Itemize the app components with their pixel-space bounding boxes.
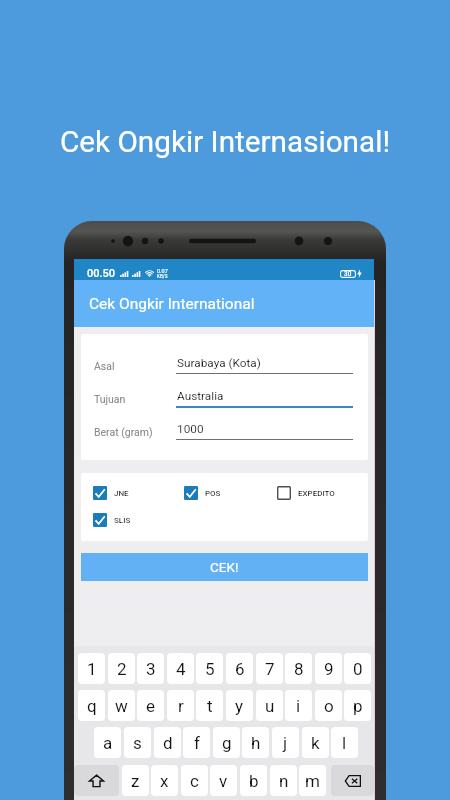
staticText: 5: [205, 659, 215, 679]
button[interactable]: 5: [196, 653, 223, 684]
button[interactable]: b: [240, 765, 267, 796]
button[interactable]: 3: [137, 653, 164, 684]
button[interactable]: h: [242, 727, 269, 758]
staticText: Australia: [177, 389, 224, 403]
button[interactable]: CEK!: [81, 553, 368, 581]
staticText: POS: [205, 489, 221, 498]
button[interactable]: s: [124, 727, 151, 758]
staticText: Surabaya (Kota): [177, 356, 261, 370]
staticText: j: [283, 733, 288, 753]
button[interactable]: 6: [226, 653, 253, 684]
button[interactable]: Backspace: [331, 765, 374, 796]
staticText: s: [133, 733, 142, 753]
staticText: 0.07: [157, 268, 168, 274]
staticText: JNE: [114, 489, 129, 498]
button[interactable]: SLIS: [93, 513, 131, 527]
staticText: 7: [265, 659, 275, 679]
button[interactable]: Cek Ongkir International: [74, 280, 374, 327]
button[interactable]: u: [256, 690, 283, 721]
button[interactable]: z: [122, 765, 149, 796]
staticText: Asal: [94, 360, 115, 372]
staticText: h: [251, 733, 261, 753]
staticText: Cek Ongkir International: [89, 295, 255, 313]
staticText: v: [219, 771, 228, 791]
button[interactable]: EXPEDITO: [277, 486, 335, 500]
staticText: p: [353, 696, 363, 716]
button[interactable]: k: [302, 727, 329, 758]
staticText: w: [115, 696, 128, 716]
staticText: y: [235, 696, 244, 716]
button[interactable]: m: [299, 765, 326, 796]
button[interactable]: l: [331, 727, 358, 758]
button[interactable]: 1: [78, 653, 105, 684]
staticText: f: [194, 733, 200, 753]
button[interactable]: f: [183, 727, 210, 758]
staticText: o: [324, 696, 334, 716]
button[interactable]: Surabaya (Kota): [176, 356, 353, 373]
staticText: z: [131, 771, 140, 791]
button[interactable]: d: [154, 727, 181, 758]
button[interactable]: y: [226, 690, 253, 721]
button[interactable]: p: [344, 690, 371, 721]
button[interactable]: a: [94, 727, 121, 758]
staticText: t: [207, 696, 213, 716]
staticText: 4: [176, 659, 186, 679]
staticText: Cek Ongkir Internasional!: [0, 124, 450, 159]
staticText: KB/S: [157, 274, 168, 279]
staticText: k: [311, 733, 320, 753]
staticText: 0: [353, 659, 363, 679]
button[interactable]: o: [315, 690, 342, 721]
staticText: 3: [146, 659, 156, 679]
staticText: 2: [117, 659, 127, 679]
button[interactable]: 9: [315, 653, 342, 684]
staticText: 8: [294, 659, 304, 679]
button[interactable]: g: [213, 727, 240, 758]
button[interactable]: x: [151, 765, 178, 796]
staticText: a: [103, 733, 113, 753]
staticText: u: [265, 696, 275, 716]
staticText: 30: [344, 270, 352, 278]
button[interactable]: c: [181, 765, 208, 796]
staticText: Berat (gram): [94, 426, 153, 438]
button[interactable]: e: [137, 690, 164, 721]
button[interactable]: i: [285, 690, 312, 721]
staticText: 00.50: [87, 267, 116, 280]
staticText: 9: [324, 659, 334, 679]
staticText: Tujuan: [94, 393, 126, 405]
button[interactable]: w: [108, 690, 135, 721]
button[interactable]: 0: [344, 653, 371, 684]
button[interactable]: Australia: [176, 389, 353, 406]
staticText: c: [190, 771, 199, 791]
staticText: l: [342, 733, 347, 753]
button[interactable]: POS: [184, 486, 221, 500]
staticText: n: [279, 771, 289, 791]
staticText: 6: [235, 659, 245, 679]
staticText: 1000: [177, 422, 204, 436]
button[interactable]: Shift: [74, 765, 119, 796]
button[interactable]: t: [196, 690, 223, 721]
button[interactable]: JNE: [93, 486, 129, 500]
staticText: EXPEDITO: [298, 489, 335, 498]
staticText: i: [296, 696, 301, 716]
button[interactable]: 7: [256, 653, 283, 684]
staticText: r: [178, 696, 184, 716]
staticText: CEK!: [210, 559, 239, 575]
staticText: d: [163, 733, 173, 753]
button[interactable]: v: [210, 765, 237, 796]
staticText: SLIS: [114, 516, 131, 525]
button[interactable]: q: [78, 690, 105, 721]
button[interactable]: 8: [285, 653, 312, 684]
button[interactable]: r: [167, 690, 194, 721]
button[interactable]: j: [272, 727, 299, 758]
staticText: m: [305, 771, 320, 791]
staticText: e: [146, 696, 156, 716]
staticText: 1: [87, 659, 97, 679]
staticText: x: [160, 771, 169, 791]
button[interactable]: 1000: [176, 422, 353, 439]
staticText: g: [222, 733, 232, 753]
button[interactable]: n: [270, 765, 297, 796]
staticText: b: [249, 771, 259, 791]
button[interactable]: 4: [167, 653, 194, 684]
staticText: q: [87, 696, 97, 716]
button[interactable]: 2: [108, 653, 135, 684]
